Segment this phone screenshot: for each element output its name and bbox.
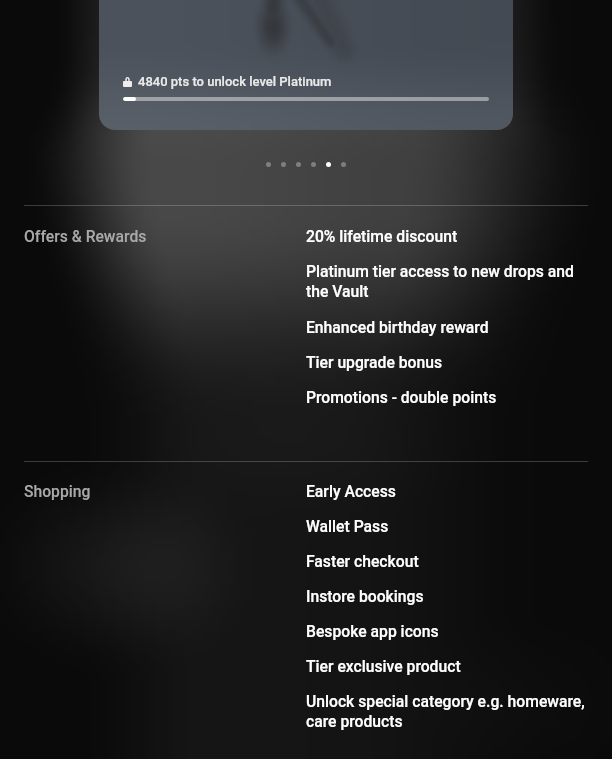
button[interactable]: Page 5 xyxy=(326,162,331,167)
staticText: Wallet Pass xyxy=(306,517,389,535)
staticText: Early Access xyxy=(306,482,396,500)
staticText: Faster checkout xyxy=(306,552,419,570)
staticText: Shopping xyxy=(24,482,91,500)
staticText: Instore bookings xyxy=(306,587,424,605)
button[interactable]: 4840 pts to unlock level Platinum xyxy=(99,0,513,130)
staticText: 20% lifetime discount xyxy=(306,227,458,245)
staticText: Offers & Rewards xyxy=(24,227,147,245)
staticText: Promotions - double points xyxy=(306,388,497,406)
button[interactable]: Page 6 xyxy=(341,162,346,167)
button[interactable]: Page 4 xyxy=(311,162,316,167)
button[interactable]: Page 1 xyxy=(266,162,271,167)
staticText: Enhanced birthday reward xyxy=(306,318,489,336)
button[interactable]: Page 2 xyxy=(281,162,286,167)
staticText: 4840 pts to unlock level Platinum xyxy=(138,74,332,89)
staticText: Tier exclusive product xyxy=(306,657,461,675)
staticText: Tier upgrade bonus xyxy=(306,353,443,371)
staticText: Platinum tier access to new drops and th… xyxy=(306,262,588,301)
staticText: Unlock special category e.g. homeware, c… xyxy=(306,692,588,731)
button[interactable]: Page 3 xyxy=(296,162,301,167)
staticText: Bespoke app icons xyxy=(306,622,439,640)
